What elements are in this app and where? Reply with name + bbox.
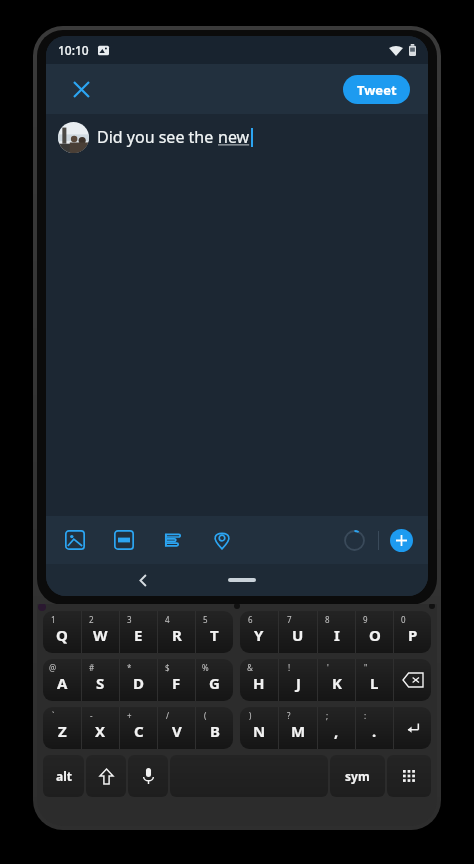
button[interactable]: : [356, 707, 393, 749]
button[interactable]: ; [318, 707, 355, 749]
button[interactable]: # [82, 659, 119, 701]
button[interactable]: + [120, 707, 157, 749]
staticText: & [247, 662, 253, 673]
button[interactable]: ? [279, 707, 317, 749]
staticText: Q [56, 625, 68, 645]
staticText: 6 [248, 614, 253, 625]
staticText: : [364, 710, 367, 721]
button[interactable]: Shift [86, 755, 126, 797]
staticText: K [332, 673, 342, 693]
button[interactable]: Close [66, 74, 96, 104]
button[interactable]: 3 [120, 611, 157, 653]
button[interactable]: Back [130, 567, 156, 593]
staticText: / [166, 710, 169, 721]
button[interactable]: Tweet [343, 75, 410, 104]
button[interactable]: Home [228, 578, 256, 582]
button[interactable]: 0 [394, 611, 431, 653]
button[interactable]: @ [43, 659, 81, 701]
staticText: 8 [325, 614, 330, 625]
staticText: N [253, 721, 266, 741]
button[interactable]: ` [43, 707, 81, 749]
staticText: . [372, 721, 377, 741]
button[interactable]: * [120, 659, 157, 701]
button[interactable]: Keyboard layout [387, 755, 431, 797]
button[interactable]: Add photo [60, 525, 90, 555]
staticText: % [202, 662, 209, 673]
button[interactable]: Add poll [158, 525, 188, 555]
staticText: 1 [51, 614, 56, 625]
staticText: 10:10 [58, 42, 89, 58]
button[interactable]: Character count [341, 527, 367, 553]
button[interactable]: $ [158, 659, 195, 701]
staticText: W [93, 625, 108, 645]
staticText: P [408, 625, 418, 645]
staticText: I [334, 625, 340, 645]
staticText: B [210, 721, 220, 741]
staticText: ) [249, 710, 252, 721]
staticText: * [127, 662, 132, 673]
staticText: 4 [165, 614, 170, 625]
staticText: Z [58, 721, 67, 741]
staticText: ` [52, 710, 55, 721]
button[interactable]: 2 [82, 611, 119, 653]
staticText: sym [345, 768, 370, 784]
staticText: , [334, 721, 339, 741]
button[interactable]: Add tweet [390, 529, 413, 552]
staticText: $ [165, 662, 170, 673]
staticText: Tweet [357, 81, 397, 99]
button[interactable]: 6 [240, 611, 278, 653]
button[interactable]: ! [279, 659, 317, 701]
button[interactable]: 7 [279, 611, 317, 653]
button[interactable]: / [158, 707, 195, 749]
staticText: C [134, 721, 144, 741]
button[interactable]: & [240, 659, 278, 701]
button[interactable] [394, 659, 431, 701]
button[interactable]: - [82, 707, 119, 749]
staticText: 2 [89, 614, 94, 625]
staticText: A [57, 673, 68, 693]
staticText: alt [56, 768, 72, 784]
button[interactable]: 8 [318, 611, 355, 653]
staticText: R [172, 625, 182, 645]
button[interactable]: ( [196, 707, 233, 749]
button[interactable]: Add location [207, 525, 237, 555]
staticText: 9 [363, 614, 368, 625]
staticText: ' [327, 662, 329, 673]
staticText: D [133, 673, 144, 693]
staticText: 5 [203, 614, 208, 625]
button[interactable]: ' [318, 659, 355, 701]
button[interactable] [394, 707, 431, 749]
staticText: ; [326, 710, 329, 721]
staticText: J [296, 673, 301, 693]
staticText: 3 [127, 614, 132, 625]
staticText: Did you see the [97, 126, 218, 148]
staticText: ! [288, 662, 291, 673]
staticText: + [127, 710, 132, 721]
staticText: E [134, 625, 143, 645]
staticText: F [172, 673, 181, 693]
staticText: 0 [401, 614, 406, 625]
button[interactable]: 9 [356, 611, 393, 653]
button[interactable]: 4 [158, 611, 195, 653]
button[interactable]: % [196, 659, 233, 701]
button[interactable]: Voice input [128, 755, 168, 797]
staticText: 7 [287, 614, 292, 625]
button[interactable]: Add GIF [109, 525, 139, 555]
staticText: # [89, 662, 95, 673]
staticText: ( [204, 710, 207, 721]
staticText: L [370, 673, 379, 693]
button[interactable]: sym [330, 755, 385, 797]
staticText: " [364, 662, 368, 673]
staticText: new [218, 126, 250, 148]
button[interactable]: 1 [43, 611, 81, 653]
staticText: - [90, 710, 93, 721]
staticText: U [292, 625, 304, 645]
button[interactable]: " [356, 659, 393, 701]
staticText: O [369, 625, 381, 645]
staticText: G [209, 673, 220, 693]
button[interactable]: ) [240, 707, 278, 749]
staticText: T [210, 625, 219, 645]
button[interactable]: alt [43, 755, 84, 797]
button[interactable]: 5 [196, 611, 233, 653]
